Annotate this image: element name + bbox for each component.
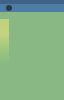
button[interactable]: Profile [6,5,12,11]
